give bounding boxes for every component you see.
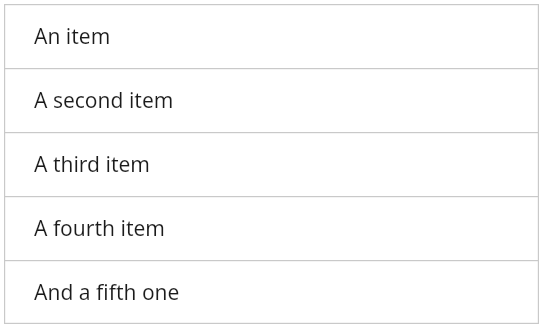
- staticText: And a fifth one: [34, 278, 180, 307]
- staticText: A fourth item: [34, 214, 165, 243]
- button[interactable]: An item: [4, 4, 539, 68]
- staticText: A third item: [34, 150, 150, 179]
- staticText: An item: [34, 22, 111, 51]
- button[interactable]: A fourth item: [4, 196, 539, 260]
- staticText: A second item: [34, 86, 174, 115]
- button[interactable]: And a fifth one: [4, 260, 539, 324]
- button[interactable]: A second item: [4, 68, 539, 132]
- button[interactable]: A third item: [4, 132, 539, 196]
